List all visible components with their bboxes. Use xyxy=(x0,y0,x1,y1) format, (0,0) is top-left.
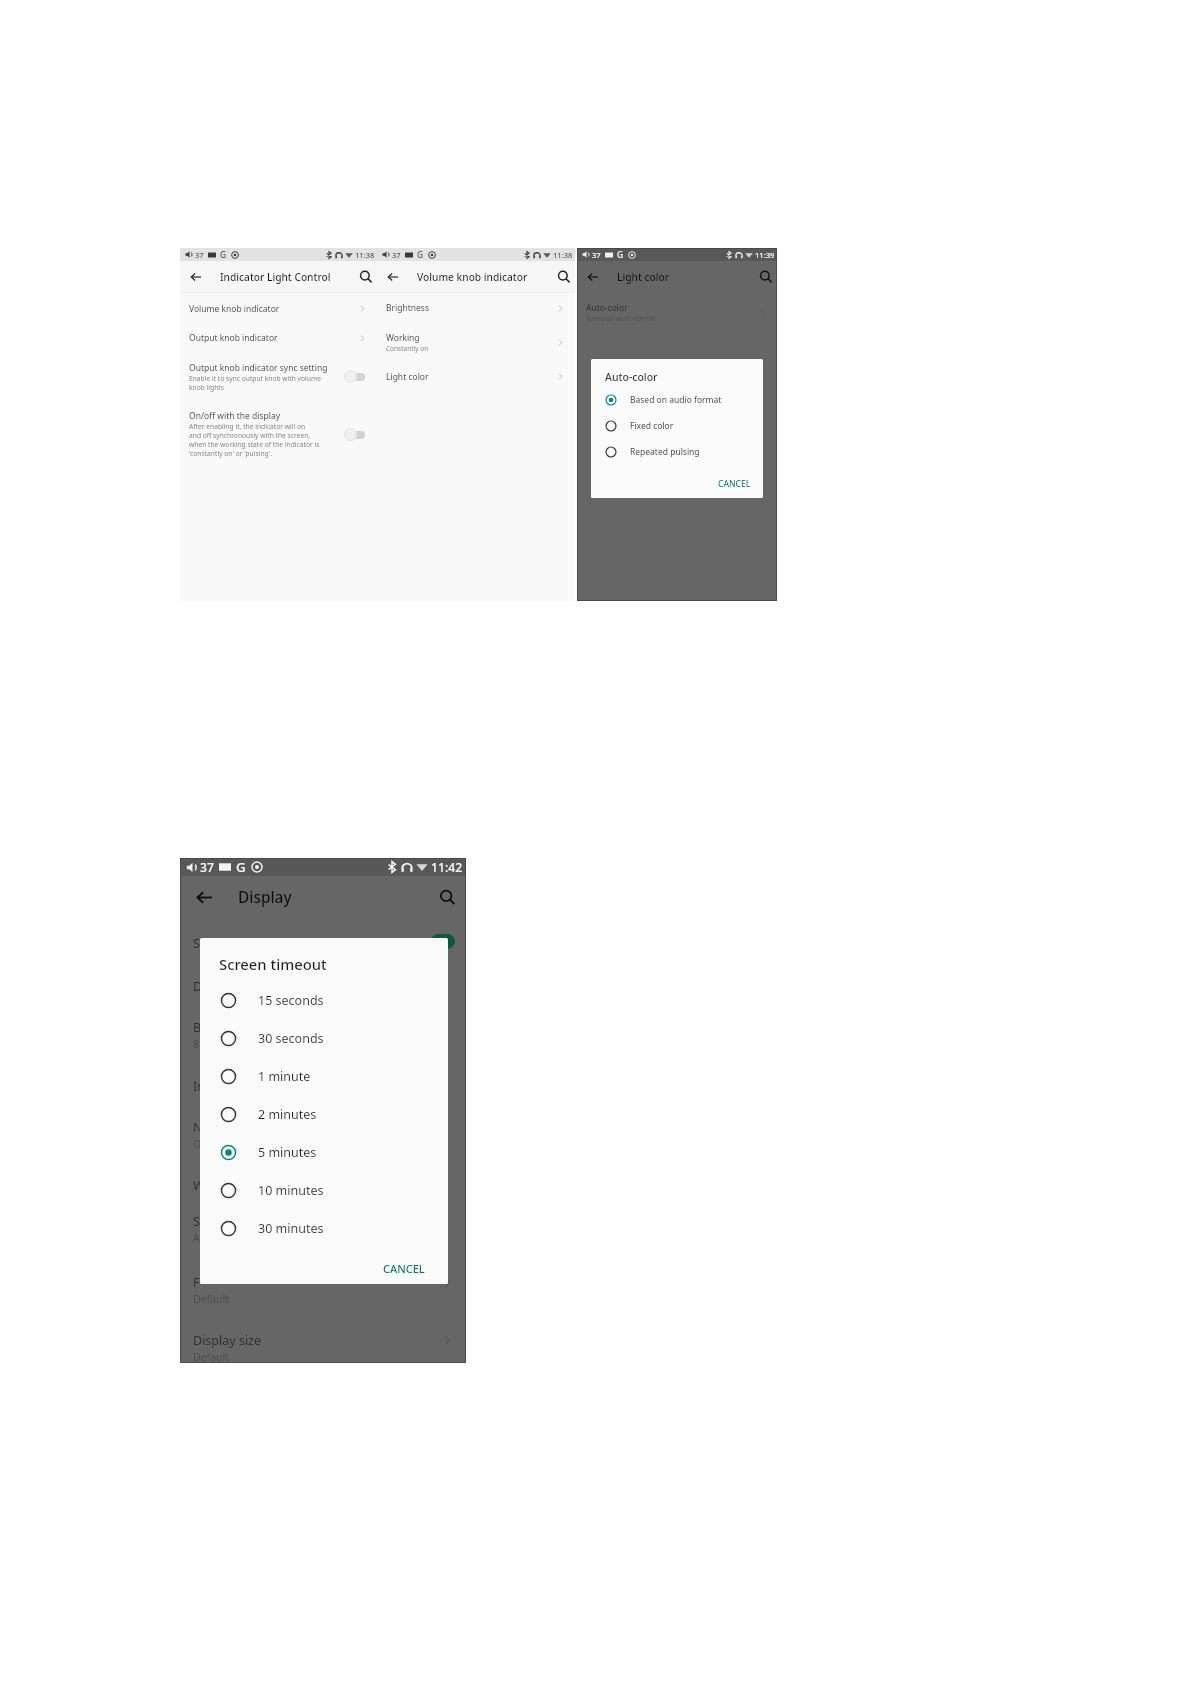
button[interactable]: 15 seconds xyxy=(200,981,448,1019)
staticText: 37 xyxy=(592,250,601,260)
button[interactable]: Volume knob indicator xyxy=(180,293,377,324)
button[interactable]: Search xyxy=(553,261,575,292)
staticText: 8 xyxy=(193,1037,200,1051)
staticText: N xyxy=(193,1119,203,1136)
staticText: A xyxy=(193,1231,200,1245)
staticText: S xyxy=(193,1213,200,1230)
button[interactable]: Auto-color xyxy=(577,292,777,332)
staticText: Based on audio format xyxy=(630,394,722,406)
staticText: O xyxy=(193,1137,202,1151)
staticText: 30 minutes xyxy=(258,1220,324,1237)
button[interactable]: Light color xyxy=(377,361,575,392)
button[interactable]: 5 minutes xyxy=(200,1133,448,1171)
button[interactable]: Repeated pulsing xyxy=(591,439,763,465)
button[interactable]: 2 minutes xyxy=(200,1095,448,1133)
button[interactable]: Back xyxy=(577,261,609,292)
staticText: 5 minutes xyxy=(258,1144,317,1161)
button[interactable]: Search xyxy=(428,876,466,919)
staticText: Volume knob indicator xyxy=(417,270,528,284)
button[interactable]: 30 seconds xyxy=(200,1019,448,1057)
staticText: Default xyxy=(193,1292,230,1306)
staticText: G xyxy=(220,249,227,260)
button[interactable]: Back xyxy=(377,261,409,292)
staticText: 11:42 xyxy=(431,859,463,876)
staticText: Based on audio format xyxy=(586,314,656,323)
staticText: Repeated pulsing xyxy=(630,446,700,458)
staticText: Indicator Light Control xyxy=(220,270,331,284)
staticText: 11:39 xyxy=(755,250,775,260)
button[interactable]: CANCEL xyxy=(706,474,763,494)
staticText: Auto-color xyxy=(586,302,628,314)
staticText: G xyxy=(236,858,246,876)
staticText: 37 xyxy=(392,250,401,260)
button[interactable]: Brightness xyxy=(377,293,575,323)
button[interactable]: Search xyxy=(355,261,377,292)
button[interactable]: Working xyxy=(377,323,575,361)
staticText: G xyxy=(417,249,424,260)
staticText: Display xyxy=(238,887,292,908)
staticText: F xyxy=(193,1274,200,1291)
button[interactable]: Search xyxy=(755,261,777,292)
staticText: 11:38 xyxy=(355,250,375,260)
staticText: Auto-color xyxy=(605,370,658,384)
staticText: Enable it to sync output knob with volum… xyxy=(189,374,321,392)
staticText: Screen timeout xyxy=(219,954,327,974)
staticText: Default xyxy=(193,1350,230,1364)
button[interactable]: Fixed color xyxy=(591,413,763,439)
staticText: Brightness xyxy=(386,302,429,314)
button[interactable]: Output knob indicator xyxy=(180,324,377,352)
staticText: G xyxy=(617,249,624,260)
button[interactable]: 10 minutes xyxy=(200,1171,448,1209)
staticText: 1 minute xyxy=(258,1068,311,1085)
staticText: D xyxy=(193,978,203,995)
staticText: CANCEL xyxy=(383,1261,425,1276)
staticText: Fixed color xyxy=(630,420,674,432)
button[interactable]: Output knob indicator sync setting xyxy=(180,352,377,401)
staticText: Display size xyxy=(193,1332,262,1349)
staticText: 15 seconds xyxy=(258,992,324,1009)
button[interactable]: Back xyxy=(180,261,212,292)
staticText: 10 minutes xyxy=(258,1182,324,1199)
staticText: 11:38 xyxy=(553,250,573,260)
staticText: In xyxy=(193,1078,205,1095)
button[interactable]: 30 minutes xyxy=(200,1209,448,1247)
staticText: B xyxy=(193,1019,202,1036)
staticText: 30 seconds xyxy=(258,1030,324,1047)
staticText: Output knob indicator sync setting xyxy=(189,362,328,374)
staticText: 37 xyxy=(195,250,204,260)
button[interactable]: On/off with the display xyxy=(180,401,377,467)
button[interactable]: Based on audio format xyxy=(591,387,763,413)
button[interactable]: Back xyxy=(180,876,228,919)
staticText: 2 minutes xyxy=(258,1106,317,1123)
staticText: Light color xyxy=(617,270,669,284)
staticText: Light color xyxy=(386,371,429,383)
staticText: CANCEL xyxy=(718,478,751,490)
staticText: After enabling it, the indicator will on… xyxy=(189,422,320,458)
button[interactable]: CANCEL xyxy=(360,1256,448,1281)
staticText: Volume knob indicator xyxy=(189,303,280,315)
button[interactable]: 1 minute xyxy=(200,1057,448,1095)
staticText: Output knob indicator xyxy=(189,332,278,344)
staticText: W xyxy=(193,1177,205,1194)
staticText: Working xyxy=(386,332,420,344)
staticText: 37 xyxy=(200,859,214,876)
staticText: Constantly on xyxy=(386,344,429,353)
staticText: S xyxy=(193,935,200,952)
staticText: On/off with the display xyxy=(189,410,281,422)
